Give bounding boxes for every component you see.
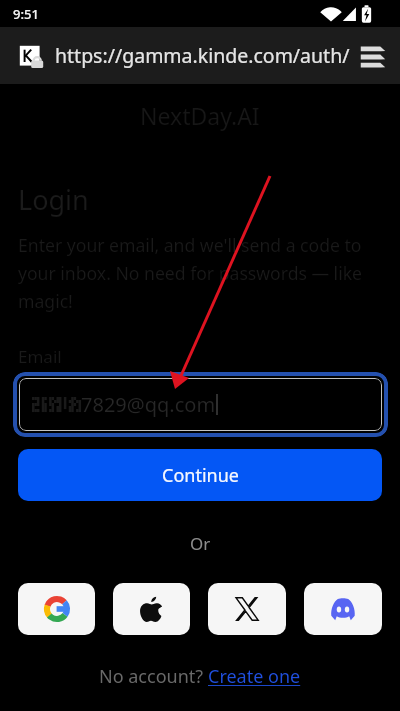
button[interactable]: Sign in with Discord	[304, 583, 382, 635]
staticText: 9:51	[13, 5, 39, 23]
staticText: https://gamma.kinde.com/auth/	[55, 42, 350, 69]
button[interactable]: Continue	[18, 449, 382, 501]
staticText: Or	[190, 532, 211, 555]
button[interactable]: Create one	[208, 664, 301, 689]
staticText: Continue	[162, 463, 239, 488]
button[interactable]: 7829@qq.com	[19, 378, 382, 431]
staticText: NextDay.AI	[140, 100, 260, 131]
button[interactable]: Sign in with Google	[18, 583, 95, 635]
staticText: Email	[18, 345, 62, 368]
staticText: Enter your email, and we'll send a code …	[18, 233, 382, 313]
staticText: 7829@qq.com	[81, 391, 216, 418]
staticText: Login	[18, 181, 89, 218]
button[interactable]: Browser menu	[358, 41, 388, 71]
staticText: No account?	[99, 664, 208, 689]
button[interactable]: Sign in with X	[208, 583, 286, 635]
button[interactable]: Sign in with Apple	[113, 583, 190, 635]
